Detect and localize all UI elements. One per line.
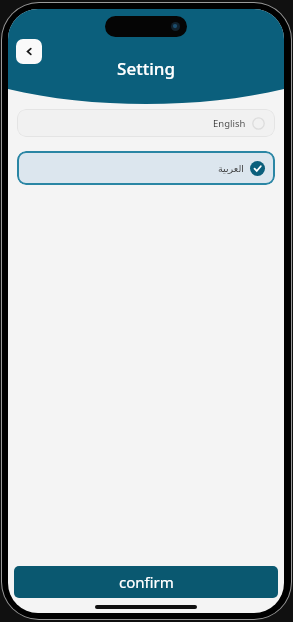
button[interactable]: العربية [17,151,275,185]
button[interactable]: Back [16,39,42,64]
button[interactable]: confirm [14,566,278,598]
staticText: Setting [117,57,175,80]
staticText: English [213,117,246,130]
staticText: confirm [119,572,174,592]
staticText: العربية [218,163,244,174]
button[interactable]: English [17,109,275,137]
